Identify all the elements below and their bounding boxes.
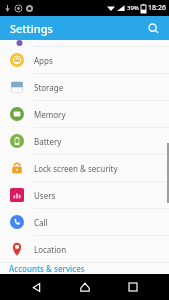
button[interactable]: Call [0, 209, 169, 235]
staticText: Location [34, 244, 67, 255]
button[interactable]: Back [23, 274, 49, 300]
staticText: Battery [34, 136, 62, 147]
button[interactable]: Apps [0, 47, 169, 73]
button[interactable] [0, 40, 169, 46]
staticText: 18:26 [148, 3, 166, 13]
button[interactable]: Search [143, 18, 163, 38]
staticText: Settings [10, 21, 53, 36]
staticText: Apps [34, 55, 53, 66]
button[interactable]: Location [0, 236, 169, 262]
button[interactable]: Lock screen & security [0, 155, 169, 181]
button[interactable]: Memory [0, 101, 169, 127]
staticText: Users [34, 190, 56, 201]
button[interactable]: Battery [0, 128, 169, 154]
staticText: Storage [34, 82, 64, 93]
staticText: Lock screen & security [34, 163, 118, 174]
button[interactable]: Home [72, 274, 98, 300]
button[interactable]: Recent apps [120, 274, 146, 300]
button[interactable]: Accounts & services [0, 263, 169, 274]
staticText: Memory [34, 109, 66, 120]
button[interactable]: Storage [0, 74, 169, 100]
staticText: Accounts & services [9, 263, 85, 274]
button[interactable]: Users [0, 182, 169, 208]
staticText: 39% [127, 4, 139, 12]
staticText: Call [34, 217, 48, 228]
